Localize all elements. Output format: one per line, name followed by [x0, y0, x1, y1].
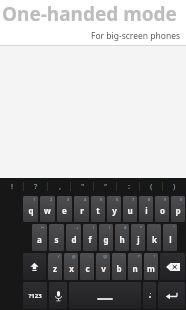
button[interactable]: ! [144, 253, 158, 280]
button[interactable]: 5 [91, 196, 105, 222]
button[interactable]: 1 [23, 196, 38, 222]
staticText: ? [34, 182, 38, 192]
staticText: 6 [116, 197, 119, 202]
button[interactable]: ´ [112, 253, 126, 280]
staticText: 5 [100, 197, 103, 202]
staticText: u [127, 205, 133, 216]
staticText: h [119, 234, 125, 245]
staticText: ) [173, 182, 176, 192]
staticText: + [76, 225, 79, 230]
button[interactable]: Enter [158, 282, 185, 309]
staticText: 2 [50, 197, 53, 202]
staticText: y [112, 205, 117, 216]
button[interactable]: : [117, 178, 140, 195]
staticText: g [103, 234, 109, 245]
button[interactable]: Symbols [23, 282, 47, 309]
staticText: w [44, 205, 51, 216]
staticText: ( [150, 182, 153, 192]
staticText: j [137, 234, 140, 245]
staticText: ? [138, 254, 140, 259]
button[interactable]: " [163, 224, 177, 251]
button[interactable]: · [80, 253, 94, 280]
staticText: z [53, 263, 57, 274]
staticText: q [28, 205, 34, 216]
button[interactable]: / [48, 253, 62, 280]
staticText: r [80, 205, 84, 216]
staticText: / [58, 254, 60, 259]
button[interactable]: - [49, 224, 64, 251]
staticText: 9 [164, 197, 167, 202]
staticText: t [96, 205, 100, 216]
staticText: One-handed mode [2, 1, 177, 27]
staticText: ! [11, 182, 13, 192]
button[interactable]: 9 [155, 196, 169, 222]
staticText: a [37, 234, 42, 245]
staticText: * [140, 225, 143, 230]
button[interactable]: 7 [123, 196, 137, 222]
button[interactable]: ) [163, 178, 186, 195]
staticText: ?123 [28, 292, 42, 300]
button[interactable]: ) [99, 224, 113, 251]
staticText: i [145, 205, 148, 216]
button[interactable]: Period [143, 282, 156, 309]
button[interactable]: + [66, 224, 81, 251]
button[interactable]: 0 [171, 196, 185, 222]
button[interactable]: ? [24, 178, 48, 195]
button[interactable]: ? [128, 253, 142, 280]
button[interactable]: 3 [57, 196, 72, 222]
button[interactable]: ✂ [32, 224, 47, 251]
staticText: 7 [132, 197, 135, 202]
button[interactable]: ' [147, 224, 161, 251]
staticText: b [116, 263, 122, 274]
staticText: o [160, 205, 165, 216]
button[interactable]: Voice input [49, 282, 67, 309]
staticText: For big-screen phones [0, 30, 180, 42]
staticText: f [88, 234, 92, 245]
staticText: ' [158, 225, 159, 230]
button[interactable]: Delete [160, 253, 185, 280]
staticText: 0 [180, 197, 183, 202]
staticText: d [71, 234, 77, 245]
button[interactable]: ‘’ [94, 178, 117, 195]
button[interactable]: * [131, 224, 145, 251]
button[interactable]: # [115, 224, 129, 251]
button[interactable]: @ [64, 253, 78, 280]
staticText: ( [93, 225, 95, 230]
staticText: 1 [33, 197, 36, 202]
staticText: v [101, 263, 106, 274]
staticText: ✂ [41, 225, 45, 230]
staticText: l [169, 234, 172, 245]
staticText: ! [154, 254, 156, 259]
button[interactable]: ! [0, 178, 24, 195]
staticText: x [69, 263, 74, 274]
button[interactable]: Shift [23, 253, 46, 280]
button[interactable]: ( [140, 178, 163, 195]
staticText: ´ [122, 254, 124, 259]
staticText: · [90, 254, 92, 259]
staticText: - [60, 225, 62, 230]
staticText: : [128, 182, 130, 192]
button[interactable]: , [48, 178, 71, 195]
button[interactable]: 4 [74, 196, 89, 222]
staticText: , [59, 182, 61, 192]
staticText: @ [72, 254, 76, 259]
button[interactable]: 8 [139, 196, 153, 222]
staticText: ) [109, 225, 111, 230]
staticText: 3 [67, 197, 70, 202]
staticText: 4 [84, 197, 87, 202]
button[interactable]: ☺ [96, 253, 110, 280]
staticText: m [147, 263, 155, 274]
staticText: n [132, 263, 138, 274]
button[interactable]: " [71, 178, 94, 195]
staticText: k [152, 234, 157, 245]
button[interactable]: Space [69, 282, 141, 309]
staticText: " [81, 182, 85, 192]
staticText: # [124, 225, 127, 230]
staticText: p [175, 205, 181, 216]
staticText: 8 [148, 197, 151, 202]
staticText: e [62, 205, 67, 216]
button[interactable]: 6 [107, 196, 121, 222]
staticText: " [173, 225, 175, 230]
button[interactable]: 2 [40, 196, 55, 222]
button[interactable]: ( [83, 224, 97, 251]
